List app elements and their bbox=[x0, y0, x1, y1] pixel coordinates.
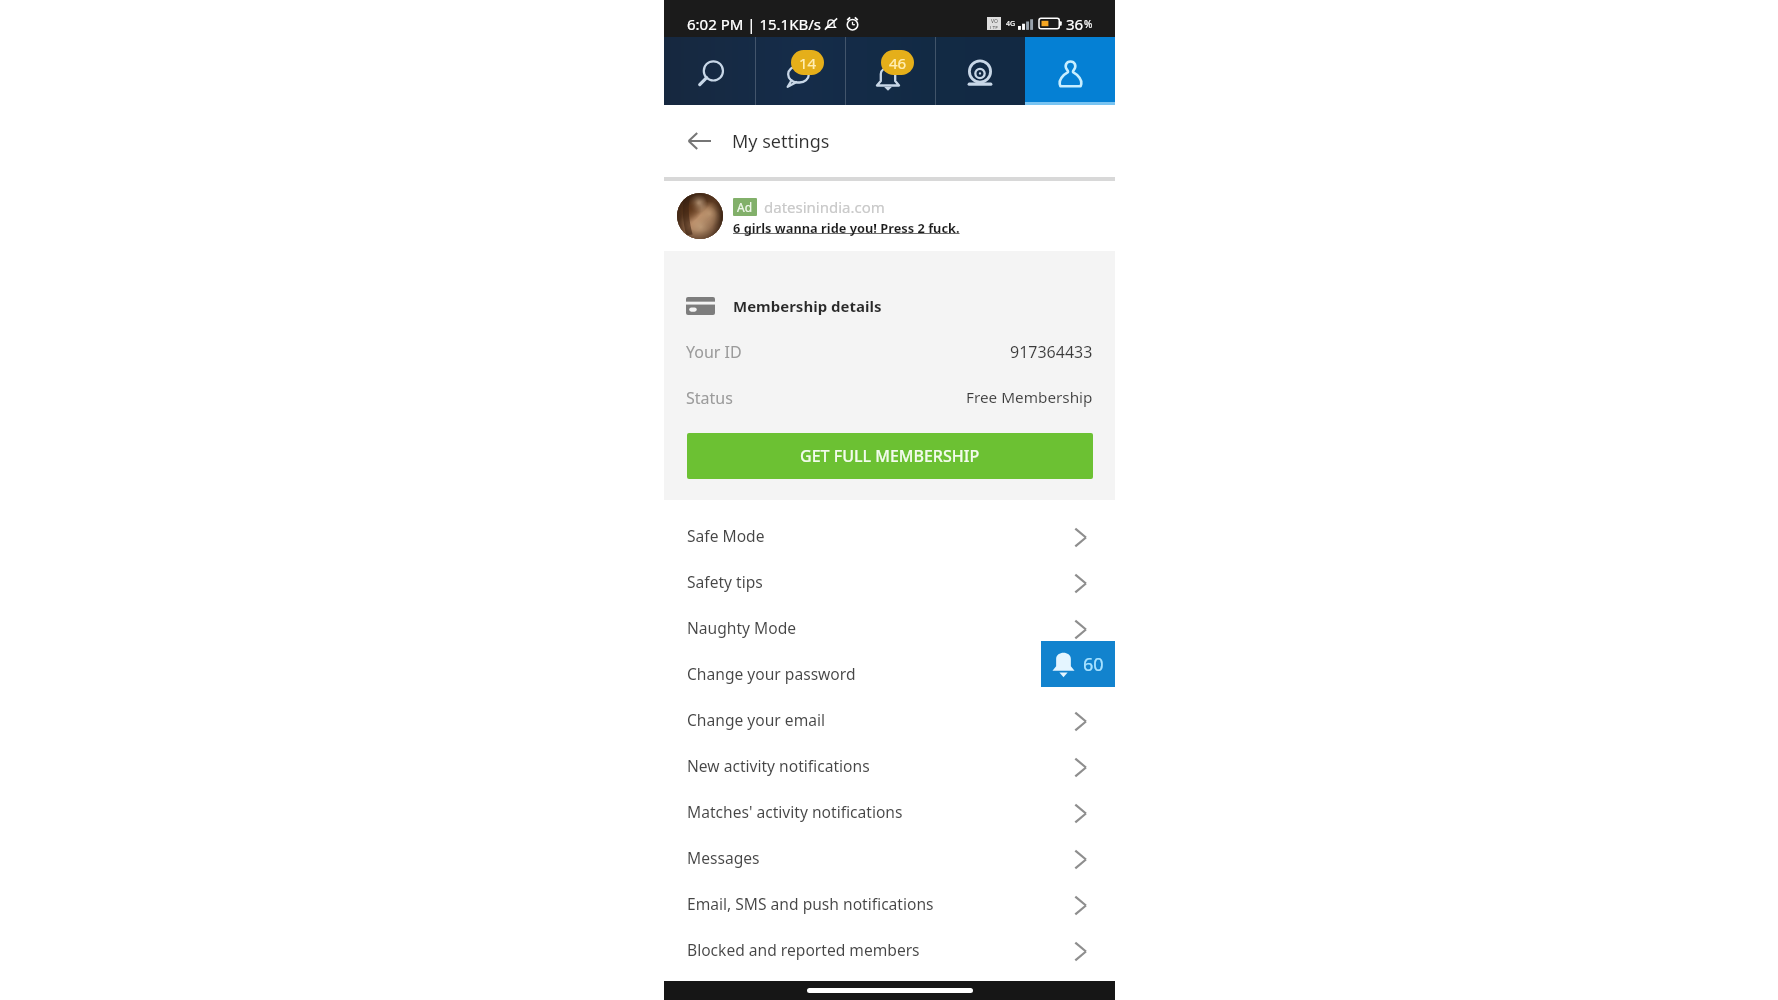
button[interactable]: Messages bbox=[664, 834, 1115, 880]
staticText: LTE bbox=[990, 25, 999, 29]
staticText: Email, SMS and push notifications bbox=[687, 893, 934, 914]
button[interactable]: Email, SMS and push notifications bbox=[664, 880, 1115, 926]
button[interactable]: Messages bbox=[755, 37, 845, 105]
button[interactable]: Naughty Mode bbox=[664, 604, 1115, 650]
button[interactable]: Ad bbox=[664, 181, 1115, 251]
staticText: GET FULL MEMBERSHIP bbox=[800, 445, 980, 467]
button[interactable]: Blocked and reported members bbox=[664, 926, 1115, 972]
button[interactable]: Back bbox=[664, 105, 711, 177]
staticText: VO bbox=[991, 18, 998, 25]
staticText: Ad bbox=[737, 199, 753, 215]
staticText: Matches' activity notifications bbox=[687, 801, 903, 822]
button[interactable]: Notifications bbox=[845, 37, 935, 105]
staticText: 36 bbox=[1066, 14, 1084, 34]
staticText: Safety tips bbox=[687, 571, 763, 592]
staticText: 917364433 bbox=[1010, 341, 1093, 363]
staticText: Free Membership bbox=[966, 387, 1093, 408]
staticText: 6:02 PM | 15.1KB/s bbox=[687, 14, 821, 34]
button[interactable]: 60 notifications bbox=[1041, 641, 1115, 687]
staticText: Naughty Mode bbox=[687, 617, 797, 638]
staticText: New activity notifications bbox=[687, 755, 870, 776]
button[interactable]: Change your password bbox=[664, 650, 1115, 696]
staticText: 4G bbox=[1006, 19, 1016, 29]
staticText: 60 bbox=[1083, 652, 1104, 677]
staticText: 46 bbox=[889, 53, 907, 73]
staticText: 6 girls wanna ride you! Press 2 fuck. bbox=[733, 219, 960, 236]
button[interactable]: Change your email bbox=[664, 696, 1115, 742]
button[interactable]: Live cams bbox=[935, 37, 1025, 105]
staticText: Your ID bbox=[686, 341, 742, 363]
staticText: Change your password bbox=[687, 663, 856, 684]
staticText: Change your email bbox=[687, 709, 826, 730]
staticText: datesinindia.com bbox=[764, 197, 885, 217]
staticText: My settings bbox=[732, 129, 830, 154]
staticText: Safe Mode bbox=[687, 525, 765, 546]
staticText: 14 bbox=[799, 53, 817, 73]
button[interactable]: Profile bbox=[1025, 37, 1115, 105]
button[interactable]: Matches' activity notifications bbox=[664, 788, 1115, 834]
staticText: Status bbox=[686, 387, 733, 409]
button[interactable]: Safe Mode bbox=[664, 512, 1115, 558]
button[interactable]: Search bbox=[664, 37, 755, 105]
staticText: Messages bbox=[687, 847, 760, 868]
button[interactable]: GET FULL MEMBERSHIP bbox=[687, 433, 1093, 479]
staticText: Membership details bbox=[733, 296, 882, 316]
staticText: Blocked and reported members bbox=[687, 939, 920, 960]
button[interactable]: Safety tips bbox=[664, 558, 1115, 604]
staticText: % bbox=[1084, 17, 1093, 31]
button[interactable]: New activity notifications bbox=[664, 742, 1115, 788]
